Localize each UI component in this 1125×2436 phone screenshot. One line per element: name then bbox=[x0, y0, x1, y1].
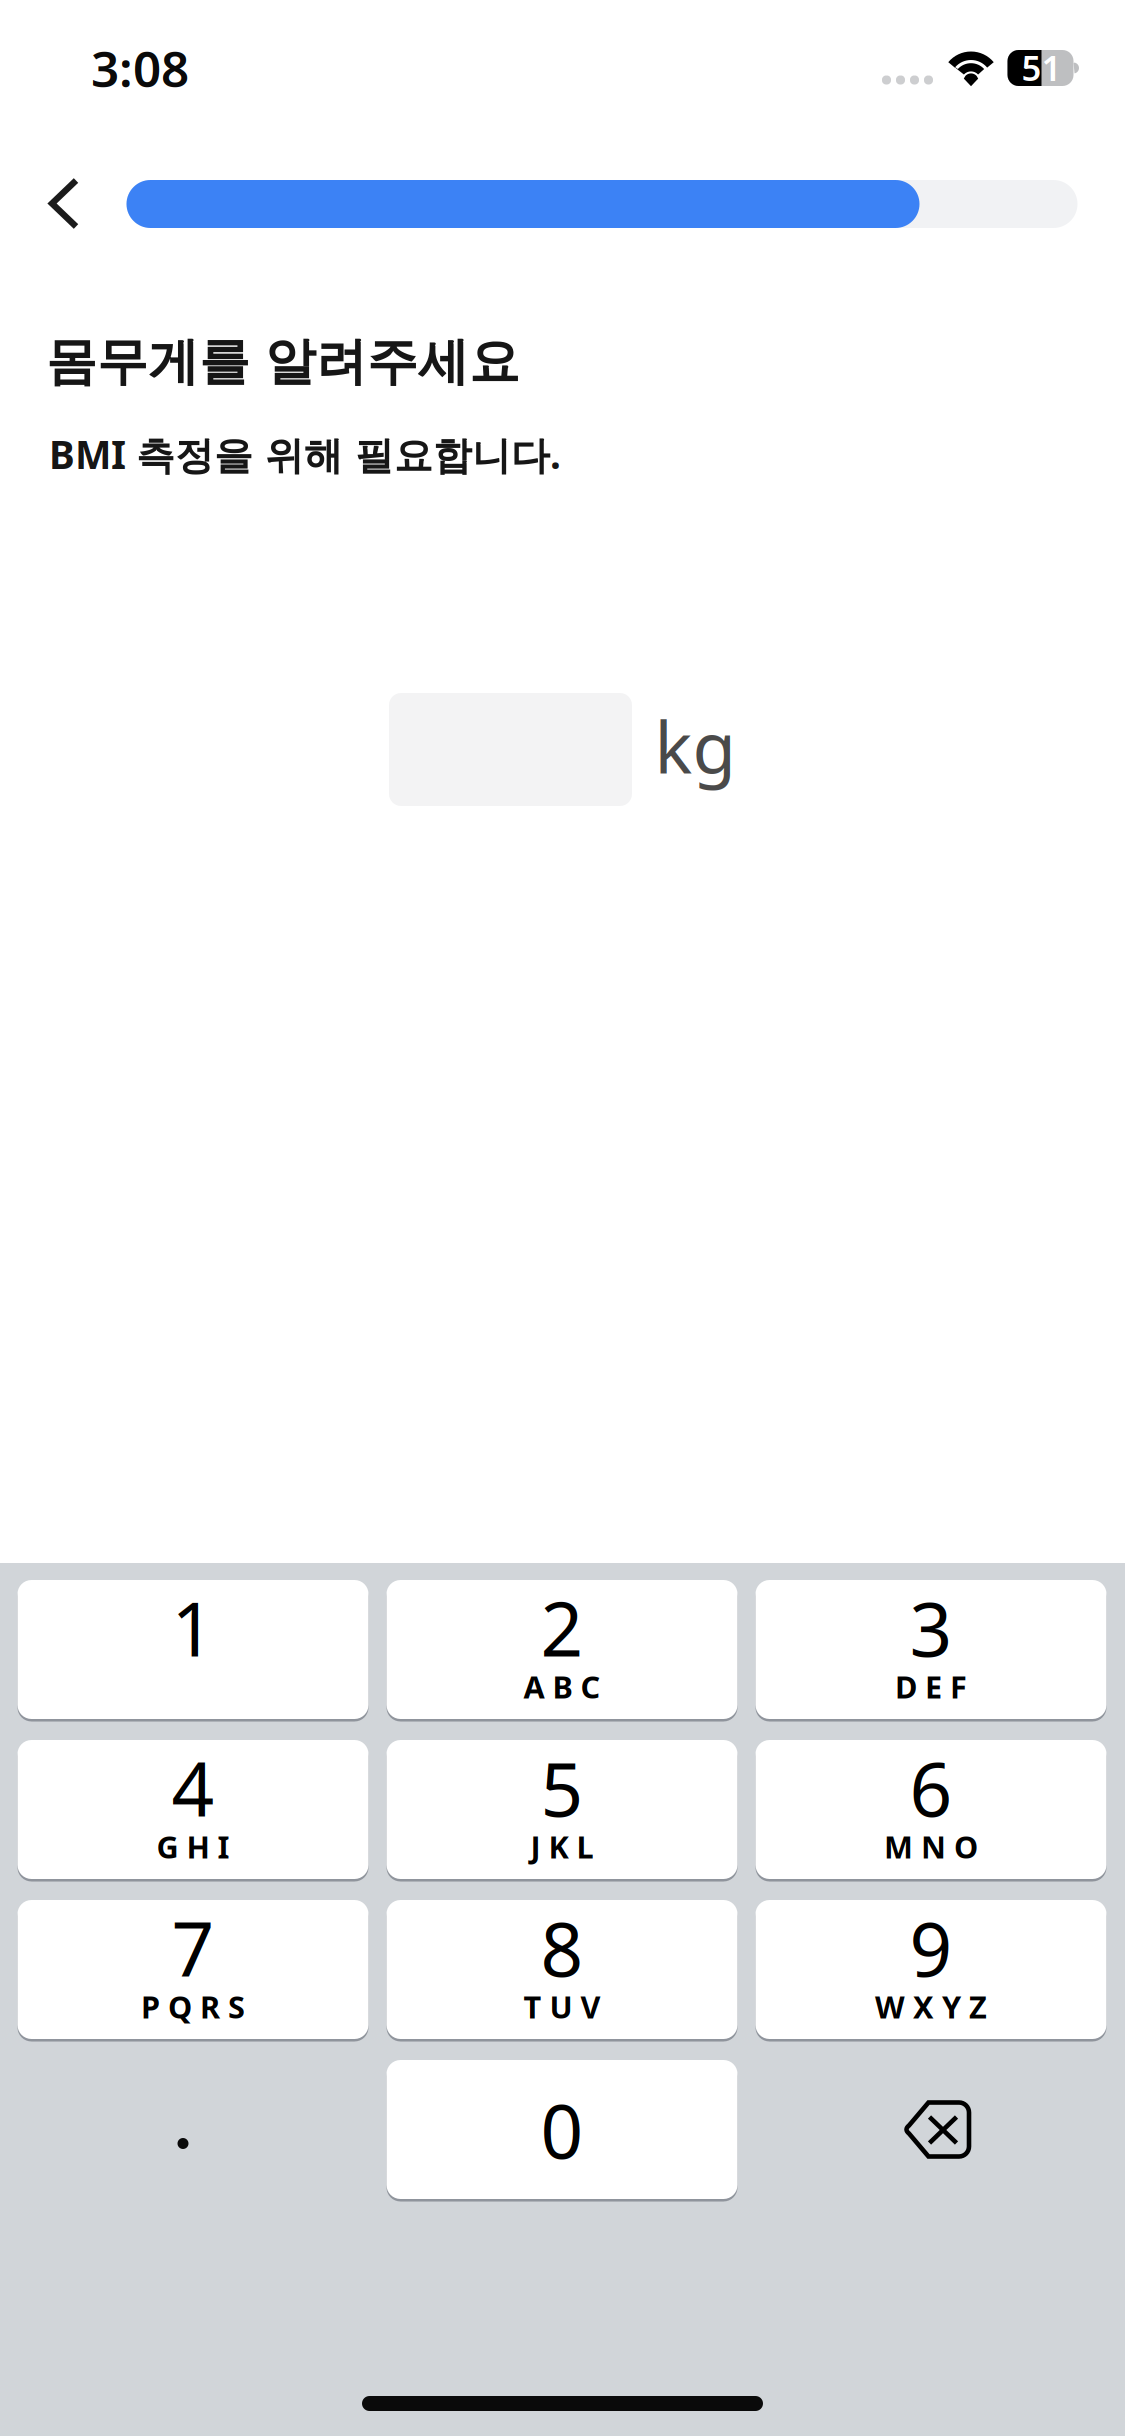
staticText: M N O bbox=[884, 1826, 978, 1867]
staticText: 7 bbox=[171, 1898, 214, 1997]
staticText: 8 bbox=[540, 1898, 583, 1997]
staticText: D E F bbox=[895, 1666, 967, 1707]
staticText: 4 bbox=[171, 1738, 214, 1837]
staticText: 9 bbox=[909, 1898, 952, 1997]
staticText: 51 bbox=[1021, 44, 1061, 90]
staticText: J K L bbox=[530, 1826, 593, 1867]
button[interactable]: Delete bbox=[755, 2060, 1106, 2199]
button[interactable]: 0 bbox=[386, 2060, 737, 2199]
button[interactable]: 2 bbox=[386, 1580, 737, 1719]
staticText: 1 bbox=[171, 1578, 214, 1677]
staticText: P Q R S bbox=[141, 1986, 245, 2027]
button[interactable]: Decimal point bbox=[17, 2060, 368, 2199]
staticText: 0 bbox=[540, 2080, 583, 2179]
button[interactable]: Back bbox=[6, 147, 122, 259]
button[interactable]: 7 bbox=[17, 1900, 368, 2039]
staticText: 3 bbox=[909, 1578, 952, 1677]
staticText: G H I bbox=[156, 1826, 229, 1867]
staticText: 2 bbox=[540, 1578, 583, 1677]
staticText: 6 bbox=[909, 1738, 952, 1837]
staticText: BMI 측정을 위해 필요합니다. bbox=[49, 428, 561, 480]
button[interactable]: 3 bbox=[755, 1580, 1106, 1719]
staticText: kg bbox=[654, 699, 735, 793]
staticText: 5 bbox=[540, 1738, 583, 1837]
button[interactable]: 1 bbox=[17, 1580, 368, 1719]
button[interactable]: 9 bbox=[755, 1900, 1106, 2039]
button[interactable]: 5 bbox=[386, 1740, 737, 1879]
button[interactable]: 4 bbox=[17, 1740, 368, 1879]
staticText: 몸무게를 알려주세요 bbox=[46, 331, 520, 393]
staticText: 3:08 bbox=[91, 35, 189, 101]
staticText: T U V bbox=[523, 1986, 600, 2027]
button[interactable]: 8 bbox=[386, 1900, 737, 2039]
staticText: W X Y Z bbox=[875, 1986, 987, 2027]
button[interactable]: 6 bbox=[755, 1740, 1106, 1879]
staticText: A B C bbox=[523, 1666, 600, 1707]
